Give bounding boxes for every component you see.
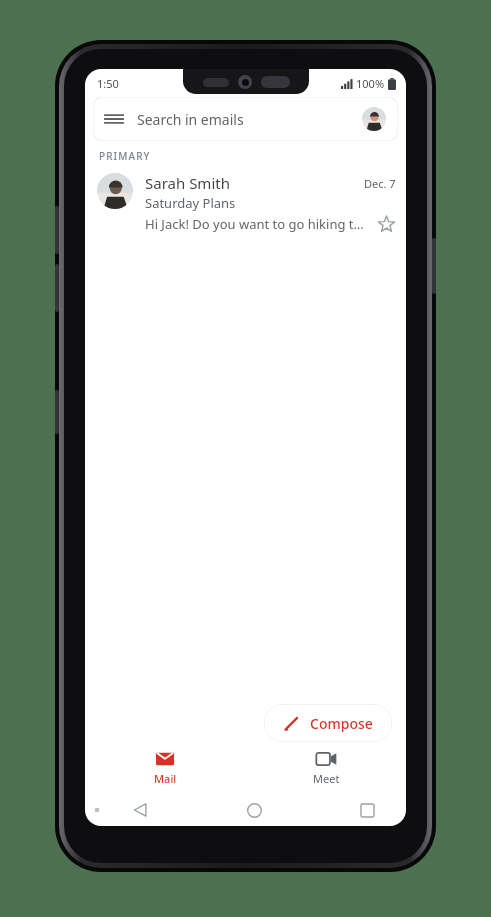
button[interactable]: Account: [362, 107, 386, 131]
button[interactable]: Sarah Smith: [85, 173, 406, 242]
staticText: Meet: [313, 771, 340, 786]
staticText: Search in emails: [137, 110, 244, 129]
staticText: 1:50: [97, 76, 119, 91]
staticText: Mail: [154, 771, 177, 786]
staticText: Dec. 7: [364, 176, 396, 191]
button[interactable]: Compose: [264, 704, 392, 742]
staticText: PRIMARY: [99, 149, 151, 163]
staticText: Hi Jack! Do you want to go hiking this w…: [145, 215, 370, 233]
button[interactable]: Open navigation menu: [93, 97, 398, 141]
button[interactable]: Mail: [127, 747, 203, 790]
button[interactable]: Home: [239, 795, 269, 825]
button[interactable]: Meet: [288, 747, 364, 790]
staticText: Sarah Smith: [145, 173, 364, 193]
button[interactable]: Back: [125, 795, 155, 825]
other: Open navigation menu: [105, 110, 123, 128]
staticText: Saturday Plans: [145, 194, 236, 212]
button[interactable]: Star email: [376, 214, 396, 234]
staticText: Compose: [310, 714, 373, 733]
staticText: 100%: [356, 76, 385, 91]
button[interactable]: Recents: [352, 795, 382, 825]
